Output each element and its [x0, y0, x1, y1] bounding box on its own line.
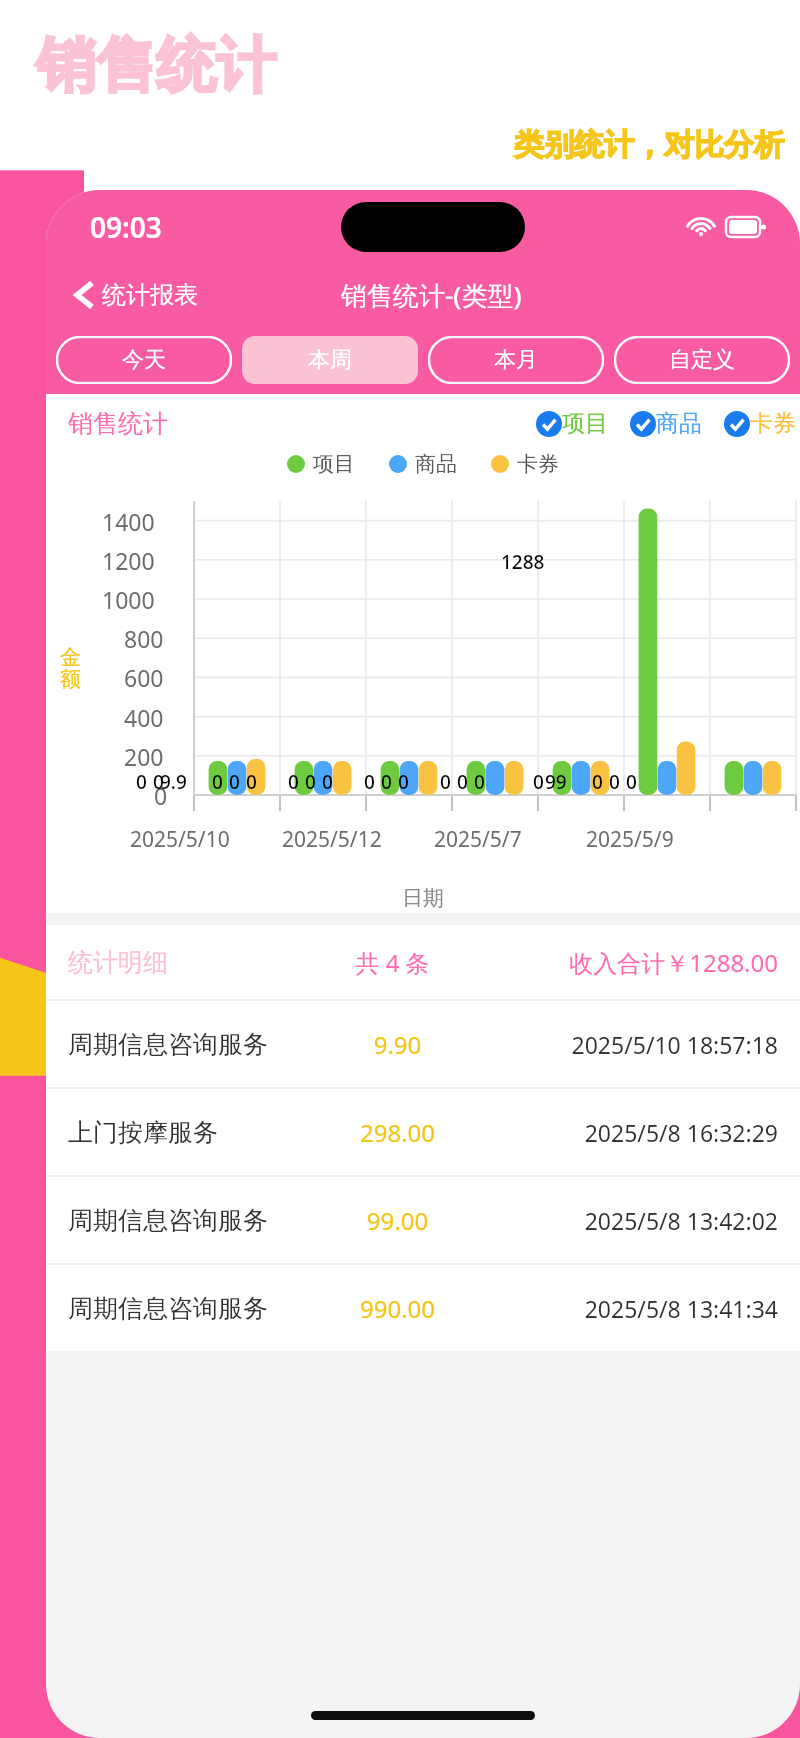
staticText: 1288 [501, 549, 545, 575]
staticText: 200 [124, 741, 164, 772]
button[interactable]: 返回 统计报表 [68, 274, 206, 316]
staticText: 2025/5/7 [434, 825, 522, 854]
staticText: 0 [153, 769, 164, 795]
staticText: 周期信息咨询服务 [68, 1029, 315, 1060]
staticText: 统计报表 [102, 280, 198, 310]
staticText: 2025/5/8 13:41:34 [480, 1293, 778, 1324]
button[interactable]: 周期信息咨询服务 [46, 1265, 800, 1351]
staticText: 0 [229, 769, 240, 795]
staticText: 0 [288, 769, 299, 795]
button[interactable]: 周期信息咨询服务 [46, 1177, 800, 1263]
staticText: 0 [322, 769, 333, 795]
staticText: 商品 [415, 451, 457, 477]
staticText: 2025/5/8 16:32:29 [480, 1117, 778, 1148]
staticText: 99 [545, 769, 567, 795]
staticText: 自定义 [669, 346, 735, 374]
staticText: 上门按摩服务 [68, 1117, 315, 1148]
staticText: 990.00 [315, 1292, 480, 1325]
staticText: 卡券 [750, 409, 796, 438]
staticText: 0 [440, 769, 451, 795]
staticText: 类别统计，对比分析 [514, 126, 784, 164]
staticText: 2025/5/8 13:42:02 [480, 1205, 778, 1236]
staticText: 0 [305, 769, 316, 795]
staticText: 周期信息咨询服务 [68, 1205, 315, 1236]
staticText: 9.90 [315, 1028, 480, 1061]
button[interactable]: 上门按摩服务 [46, 1089, 800, 1175]
staticText: 0 [364, 769, 375, 795]
button[interactable]: 卡券 [724, 409, 796, 438]
staticText: 0 [533, 769, 544, 795]
button[interactable]: 本周 [242, 336, 418, 384]
staticText: 卡券 [517, 451, 559, 477]
staticText: 今天 [122, 346, 166, 374]
staticText: 统计明细 [68, 947, 291, 978]
staticText: 298.00 [315, 1116, 480, 1149]
button[interactable]: 周期信息咨询服务 [46, 1001, 800, 1087]
staticText: 商品 [656, 409, 702, 438]
staticText: 周期信息咨询服务 [68, 1293, 315, 1324]
staticText: 800 [124, 623, 164, 654]
staticText: 收入合计￥1288.00 [494, 946, 778, 979]
staticText: 0 [474, 769, 485, 795]
staticText: 共 4 条 [291, 946, 494, 979]
staticText: 销售统计-(类型) [341, 277, 522, 313]
staticText: 1200 [102, 545, 155, 576]
button[interactable]: 自定义 [614, 336, 790, 384]
staticText: 0 [381, 769, 392, 795]
staticText: 9.9 [160, 769, 187, 795]
staticText: 本月 [494, 346, 538, 374]
staticText: 0 [609, 769, 620, 795]
staticText: 日期 [402, 885, 444, 911]
staticText: 0 [154, 780, 168, 811]
staticText: 09:03 [90, 208, 162, 246]
staticText: 2025/5/10 [130, 825, 230, 854]
staticText: 本周 [308, 346, 352, 374]
staticText: 0 [136, 769, 147, 795]
staticText: 400 [124, 702, 164, 733]
staticText: 项目 [562, 409, 608, 438]
button[interactable]: 项目 [536, 409, 608, 438]
staticText: 0 [212, 769, 223, 795]
staticText: 2025/5/10 18:57:18 [480, 1029, 778, 1060]
staticText: 0 [626, 769, 637, 795]
staticText: 0 [246, 769, 257, 795]
staticText: 2025/5/9 [586, 825, 674, 854]
staticText: 0 [457, 769, 468, 795]
button[interactable]: 今天 [56, 336, 232, 384]
staticText: 金 额 [60, 644, 81, 693]
staticText: 0 [592, 769, 603, 795]
staticText: 2025/5/12 [282, 825, 382, 854]
button[interactable]: 本月 [428, 336, 604, 384]
staticText: 销售统计 [68, 408, 168, 439]
staticText: 1400 [102, 506, 155, 537]
button[interactable]: 商品 [630, 409, 702, 438]
staticText: 销售统计 [36, 28, 276, 104]
staticText: 99.00 [315, 1204, 480, 1237]
staticText: 1000 [102, 584, 155, 615]
staticText: 600 [124, 662, 164, 693]
staticText: 项目 [313, 451, 355, 477]
staticText: 0 [398, 769, 409, 795]
